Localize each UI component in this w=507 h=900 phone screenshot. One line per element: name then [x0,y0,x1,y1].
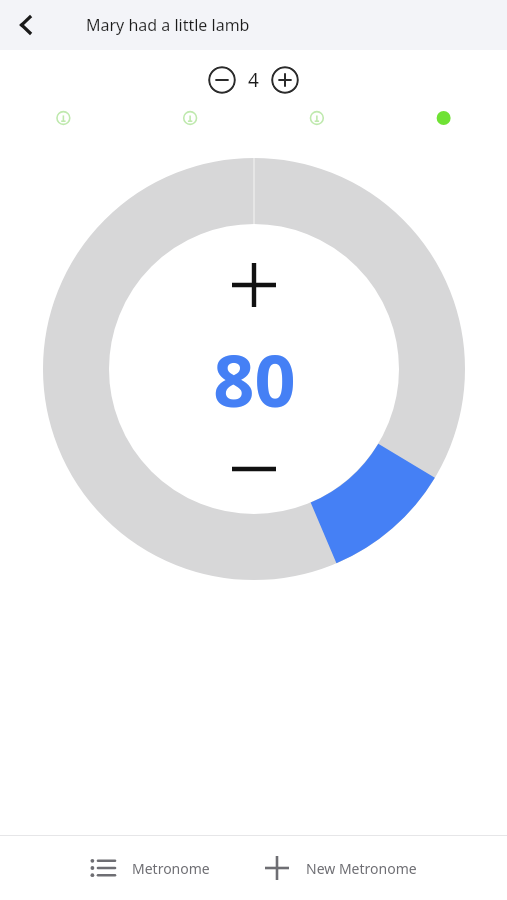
staticText: Mary had a little lamb [86,14,250,36]
button[interactable]: Back [0,0,52,50]
button[interactable]: New Metronome [254,847,427,889]
staticText: 4 [248,67,259,93]
staticText: 80 [213,330,296,428]
button[interactable]: Decrease beats [208,66,236,94]
button[interactable]: Metronome [80,847,220,889]
button[interactable]: Increase tempo [219,250,289,320]
button[interactable]: Decrease tempo [219,434,289,504]
staticText: New Metronome [306,859,417,878]
staticText: Metronome [132,859,210,878]
button[interactable]: Increase beats [271,66,299,94]
